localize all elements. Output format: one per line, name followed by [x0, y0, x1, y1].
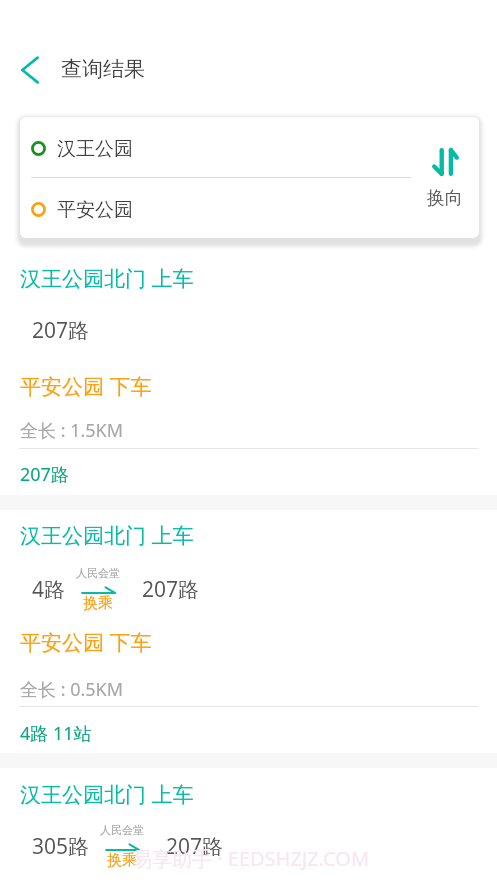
staticText: 换乘: [83, 594, 113, 613]
staticText: 全长 : 0.5KM: [20, 677, 124, 702]
staticText: 305路: [32, 832, 90, 861]
staticText: 易享助手 · EEDSHZJZ.COM: [132, 845, 370, 872]
staticText: 人民会堂: [76, 566, 120, 580]
staticText: 汉王公园: [57, 137, 133, 159]
button[interactable]: 汉王公园北门 上车: [0, 238, 497, 495]
staticText: 平安公园 下车: [20, 372, 152, 401]
staticText: 全长 : 1.5KM: [20, 418, 124, 443]
staticText: 4路: [32, 575, 66, 604]
staticText: 4路 11站: [20, 721, 92, 746]
button[interactable]: 汉王公园北门 上车: [0, 510, 497, 753]
staticText: 207路: [142, 575, 200, 604]
staticText: 汉王公园北门 上车: [20, 264, 194, 293]
button[interactable]: 汉王公园: [31, 137, 423, 159]
staticText: 汉王公园北门 上车: [20, 780, 194, 809]
button[interactable]: 汉王公园北门 上车: [0, 768, 497, 883]
staticText: 平安公园 下车: [20, 628, 152, 657]
staticText: 207路: [32, 316, 90, 345]
staticText: 换向: [427, 187, 463, 210]
staticText: 汉王公园北门 上车: [20, 521, 194, 550]
staticText: 人民会堂: [100, 823, 144, 837]
staticText: 查询结果: [61, 56, 145, 82]
staticText: 207路: [20, 462, 69, 487]
staticText: 207路: [166, 832, 224, 861]
button[interactable]: Back: [8, 48, 52, 92]
button[interactable]: Swap direction: [411, 117, 479, 238]
staticText: 换乘: [107, 851, 137, 870]
button[interactable]: 平安公园: [31, 198, 423, 220]
staticText: 平安公园: [57, 198, 133, 220]
